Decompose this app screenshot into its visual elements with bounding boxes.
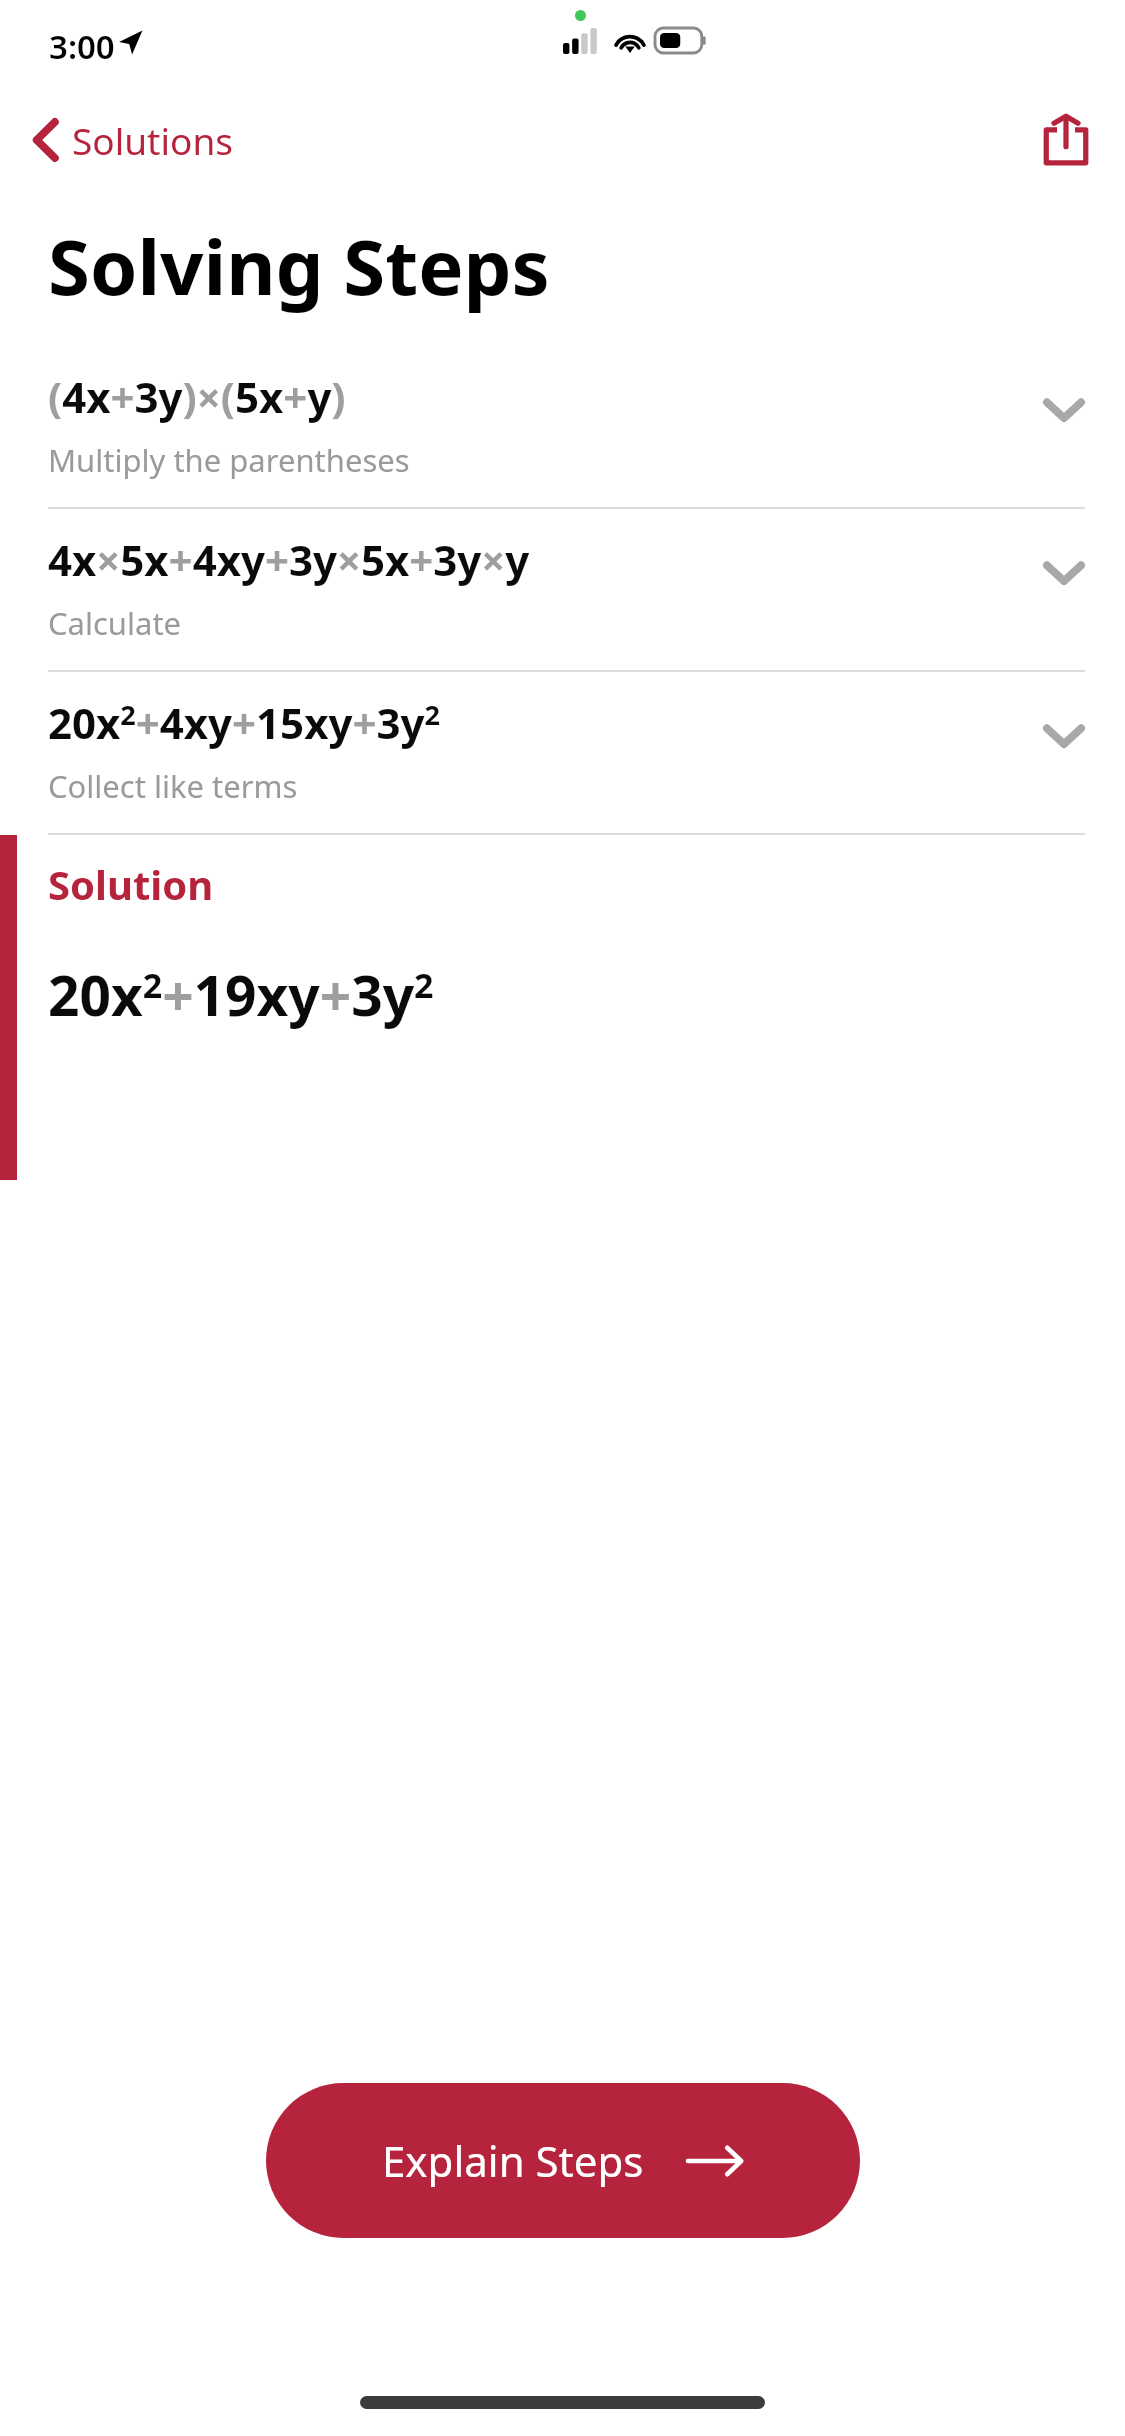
staticText: 4x×5x+4xy+3y×5x+3y×y — [48, 531, 530, 588]
button[interactable]: Explain Steps — [266, 2083, 860, 2238]
staticText: Explain Steps — [382, 2132, 644, 2189]
staticText: Collect like terms — [48, 765, 298, 807]
staticText: 20x2+19xy+3y2 — [48, 957, 434, 1032]
staticText: (4x+3y)×(5x+y) — [48, 368, 346, 425]
button[interactable]: (4x+3y)×(5x+y) — [0, 346, 1125, 509]
staticText: Calculate — [48, 602, 182, 644]
staticText: Solution — [48, 857, 214, 911]
staticText: 20x2+4xy+15xy+3y2 — [48, 694, 440, 751]
staticText: 3:00 — [49, 24, 115, 69]
button[interactable]: 4x×5x+4xy+3y×5x+3y×y — [0, 509, 1125, 672]
staticText: Solutions — [72, 115, 233, 165]
button[interactable]: 20x2+4xy+15xy+3y2 — [0, 672, 1125, 835]
button[interactable]: Solutions — [24, 109, 241, 171]
button[interactable]: Share — [1031, 102, 1101, 178]
staticText: Solving Steps — [48, 214, 550, 318]
staticText: Multiply the parentheses — [48, 439, 410, 481]
